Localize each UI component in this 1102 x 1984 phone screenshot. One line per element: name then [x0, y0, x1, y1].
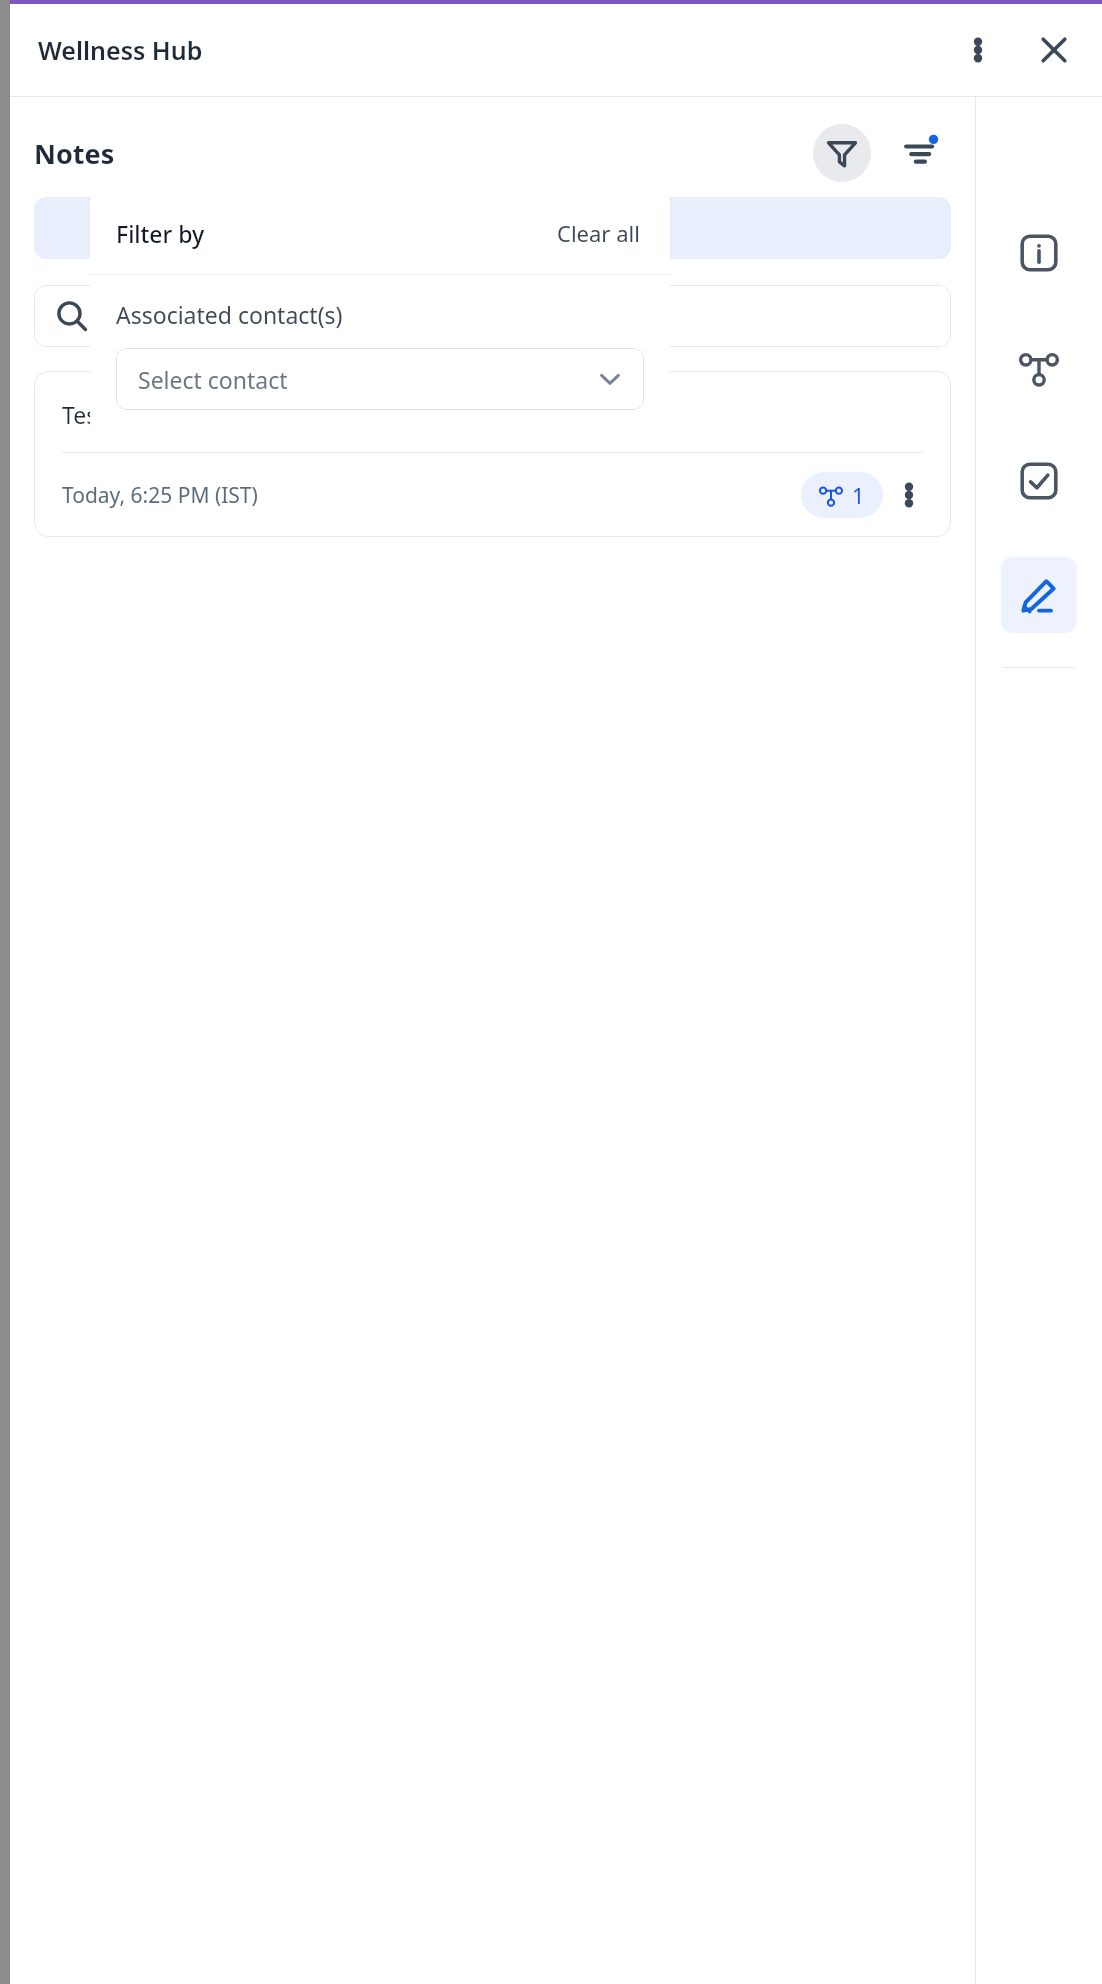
staticText: Notes: [34, 135, 115, 172]
button[interactable]: Clear all: [553, 214, 644, 252]
button[interactable]: [34, 197, 951, 259]
staticText: Filter by: [116, 218, 205, 249]
button[interactable]: [34, 285, 951, 347]
staticText: Associated contact(s): [116, 299, 343, 330]
button[interactable]: Select contact: [116, 348, 644, 410]
button[interactable]: Test note: [34, 371, 951, 537]
staticText: 1: [852, 480, 865, 510]
button[interactable]: Close: [1030, 26, 1078, 74]
button[interactable]: Filter: [813, 124, 871, 182]
button[interactable]: Notes: [1001, 557, 1077, 633]
staticText: Clear all: [557, 218, 640, 248]
button[interactable]: Sort: [893, 124, 951, 182]
button[interactable]: More options: [954, 26, 1002, 74]
button[interactable]: Note options: [883, 469, 935, 521]
staticText: Select contact: [138, 364, 288, 395]
button[interactable]: Tasks: [1001, 443, 1077, 519]
button[interactable]: Info: [1001, 215, 1077, 291]
button[interactable]: Relationships: [1001, 329, 1077, 405]
button[interactable]: 1: [801, 472, 883, 518]
staticText: Today, 6:25 PM (IST): [62, 481, 258, 510]
staticText: Test note: [62, 399, 161, 430]
staticText: Wellness Hub: [38, 33, 203, 67]
